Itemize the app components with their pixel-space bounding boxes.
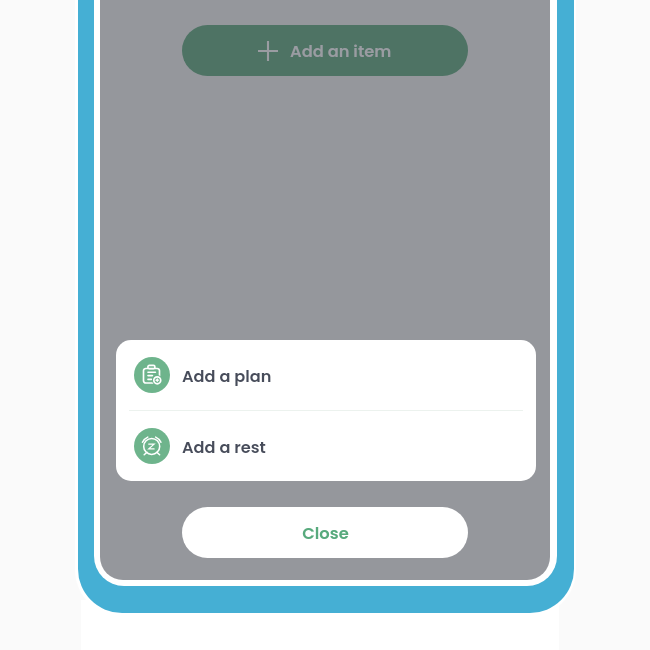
staticText: Add a plan <box>182 365 272 388</box>
button[interactable]: Add <box>182 25 468 76</box>
staticText: Add a rest <box>182 436 266 459</box>
button[interactable]: Add a rest <box>116 411 536 481</box>
other: Add <box>258 41 278 61</box>
staticText: Add an item <box>290 40 392 63</box>
button[interactable]: Close <box>182 507 468 558</box>
button[interactable]: Add a plan <box>116 340 536 410</box>
other: Add a plan <box>134 357 170 393</box>
staticText: Close <box>302 522 349 545</box>
other: Add a rest <box>134 428 170 464</box>
